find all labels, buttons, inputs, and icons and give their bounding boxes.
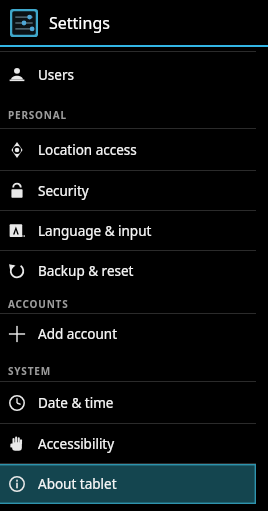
staticText: Settings bbox=[49, 12, 110, 34]
button[interactable]: Add account bbox=[0, 314, 256, 354]
button[interactable]: Date & time bbox=[0, 382, 256, 423]
staticText: ACCOUNTS bbox=[8, 297, 69, 311]
staticText: Add account bbox=[38, 325, 118, 343]
staticText: About tablet bbox=[38, 475, 117, 493]
button[interactable]: Language & input bbox=[0, 211, 256, 250]
staticText: PERSONAL bbox=[8, 108, 67, 122]
staticText: Accessibility bbox=[38, 435, 115, 453]
staticText: Language & input bbox=[38, 222, 152, 240]
button[interactable]: About tablet bbox=[0, 464, 256, 504]
button[interactable]: Security bbox=[0, 171, 256, 210]
staticText: Date & time bbox=[38, 394, 114, 412]
button[interactable]: Accessibility bbox=[0, 424, 256, 463]
button[interactable]: Users bbox=[0, 52, 256, 97]
staticText: Location access bbox=[38, 141, 137, 159]
other: Settings bbox=[10, 9, 38, 37]
staticText: SYSTEM bbox=[8, 364, 51, 378]
staticText: Users bbox=[38, 66, 74, 84]
button[interactable]: Location access bbox=[0, 129, 256, 170]
button[interactable]: Settings bbox=[0, 0, 268, 45]
staticText: Backup & reset bbox=[38, 262, 134, 280]
staticText: Security bbox=[38, 182, 89, 200]
button[interactable]: Backup & reset bbox=[0, 251, 256, 290]
